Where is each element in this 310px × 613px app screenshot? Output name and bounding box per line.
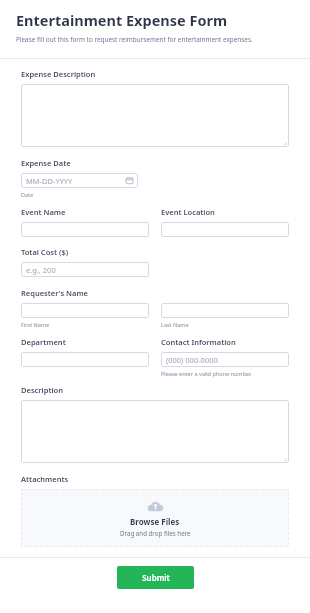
button[interactable]: Submit xyxy=(117,566,194,589)
button[interactable]: e.g., 200 xyxy=(21,262,149,277)
staticText: Please enter a valid phone number. xyxy=(161,370,252,377)
staticText: Attachments xyxy=(21,474,69,484)
staticText: Event Location xyxy=(161,207,215,217)
button[interactable] xyxy=(21,222,149,237)
staticText: Last Name xyxy=(161,321,189,328)
staticText: e.g., 200 xyxy=(26,265,56,275)
staticText: MM-DD-YYYY xyxy=(26,176,73,186)
staticText: Contact Information xyxy=(161,337,236,347)
button[interactable] xyxy=(161,303,289,318)
staticText: Description xyxy=(21,385,63,395)
staticText: (000) 000-0000 xyxy=(166,355,218,365)
staticText: Expense Description xyxy=(21,69,96,79)
staticText: Event Name xyxy=(21,207,66,217)
staticText: Browse Files xyxy=(130,516,180,527)
staticText: Requester's Name xyxy=(21,288,88,298)
button[interactable] xyxy=(21,303,149,318)
staticText: Expense Date xyxy=(21,158,71,168)
staticText: Total Cost ($) xyxy=(21,247,69,257)
button[interactable] xyxy=(21,352,149,367)
staticText: Department xyxy=(21,337,66,347)
staticText: First Name xyxy=(21,321,50,328)
button[interactable]: MM-DD-YYYY xyxy=(21,173,138,188)
staticText: Drag and drop files here xyxy=(120,529,191,537)
button[interactable]: Browse Files xyxy=(21,489,289,547)
button[interactable] xyxy=(21,400,289,463)
staticText: Date xyxy=(21,191,34,198)
staticText: Submit xyxy=(142,572,170,583)
button[interactable] xyxy=(161,222,289,237)
button[interactable]: (000) 000-0000 xyxy=(161,352,289,367)
button[interactable] xyxy=(21,84,289,147)
staticText: Please fill out this form to request rei… xyxy=(16,35,253,44)
staticText: Entertainment Expense Form xyxy=(16,10,228,30)
